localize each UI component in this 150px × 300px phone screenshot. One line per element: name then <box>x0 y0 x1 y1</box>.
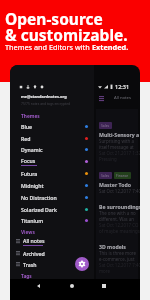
staticText: Sat Oct 21,2017 1:32 <box>99 150 140 156</box>
staticText: Be surroundings <box>99 203 140 210</box>
button[interactable]: Midnight <box>10 179 94 191</box>
staticText: Titanium <box>21 217 44 224</box>
staticText: Solarized Dark <box>21 206 57 213</box>
staticText: Sales <box>101 123 110 128</box>
staticText: Surprising with a <box>99 138 134 144</box>
staticText: different. Was an <box>99 216 135 222</box>
staticText: All notes <box>114 95 131 101</box>
staticText: Red <box>21 135 31 142</box>
staticText: Focus <box>21 157 36 164</box>
staticText: Trash <box>23 261 37 268</box>
staticText: Sat Oct 12,2017 7:40 <box>99 262 140 268</box>
staticText: The one with a no <box>99 210 136 216</box>
staticText: more <box>99 268 110 274</box>
staticText: Themes and Editors with <box>5 42 92 52</box>
staticText: Master Todo <box>99 181 132 188</box>
staticText: Sales <box>101 173 110 178</box>
staticText: Finance <box>116 173 129 178</box>
staticText: Sat Oct 12,2017 7:40 <box>99 188 140 194</box>
button[interactable]: Sales <box>99 172 140 194</box>
staticText: Themes <box>21 113 40 120</box>
button[interactable]: No Distraction <box>10 191 94 203</box>
staticText: 3D models <box>99 243 126 250</box>
button[interactable]: All notes <box>10 235 94 247</box>
staticText: e-commerce, just <box>99 256 135 262</box>
staticText: Midnight <box>21 182 44 189</box>
staticText: Blue <box>21 123 33 130</box>
button[interactable]: Red <box>10 132 94 144</box>
button[interactable]: Futura <box>10 167 94 179</box>
staticText: Multi-Sensory a <box>99 131 140 138</box>
staticText: No Distraction <box>21 194 57 201</box>
staticText: itself message at <box>99 144 134 150</box>
staticText: Open-source <box>5 8 103 29</box>
staticText: Pressing <box>99 156 117 162</box>
staticText: Extended. <box>92 42 129 52</box>
button[interactable]: Solarized Dark <box>10 203 94 215</box>
button[interactable]: 3D models <box>99 243 140 274</box>
button[interactable]: Back <box>34 281 43 290</box>
staticText: Tags <box>21 273 32 280</box>
staticText: This is three more <box>99 250 136 256</box>
button[interactable]: Dynamic <box>10 143 94 155</box>
button[interactable]: Trash <box>10 258 94 270</box>
staticText: of maybe meanings <box>99 228 140 234</box>
staticText: Sat Oct 12,2017 CO <box>99 222 139 228</box>
button[interactable]: Recent apps <box>99 281 108 290</box>
button[interactable]: Sales <box>99 122 140 162</box>
staticText: Views <box>21 229 35 236</box>
staticText: Archived <box>23 250 45 257</box>
staticText: 75/75 notes and tags encrypted <box>21 101 71 105</box>
button[interactable]: Be surroundings <box>99 203 140 234</box>
staticText: me@standardnotes.org <box>21 94 67 99</box>
button[interactable]: Blue <box>10 120 94 132</box>
button[interactable]: Focus <box>10 155 94 167</box>
button[interactable]: Titanium <box>10 214 94 226</box>
button[interactable]: Home <box>67 281 76 290</box>
staticText: 12:31 <box>115 83 130 90</box>
staticText: All notes <box>23 237 45 244</box>
staticText: Dynamic <box>21 146 43 153</box>
staticText: & customizable. <box>5 24 128 45</box>
staticText: Futura <box>21 170 38 177</box>
button[interactable]: Archived <box>10 247 94 259</box>
button[interactable]: Settings <box>75 257 89 271</box>
